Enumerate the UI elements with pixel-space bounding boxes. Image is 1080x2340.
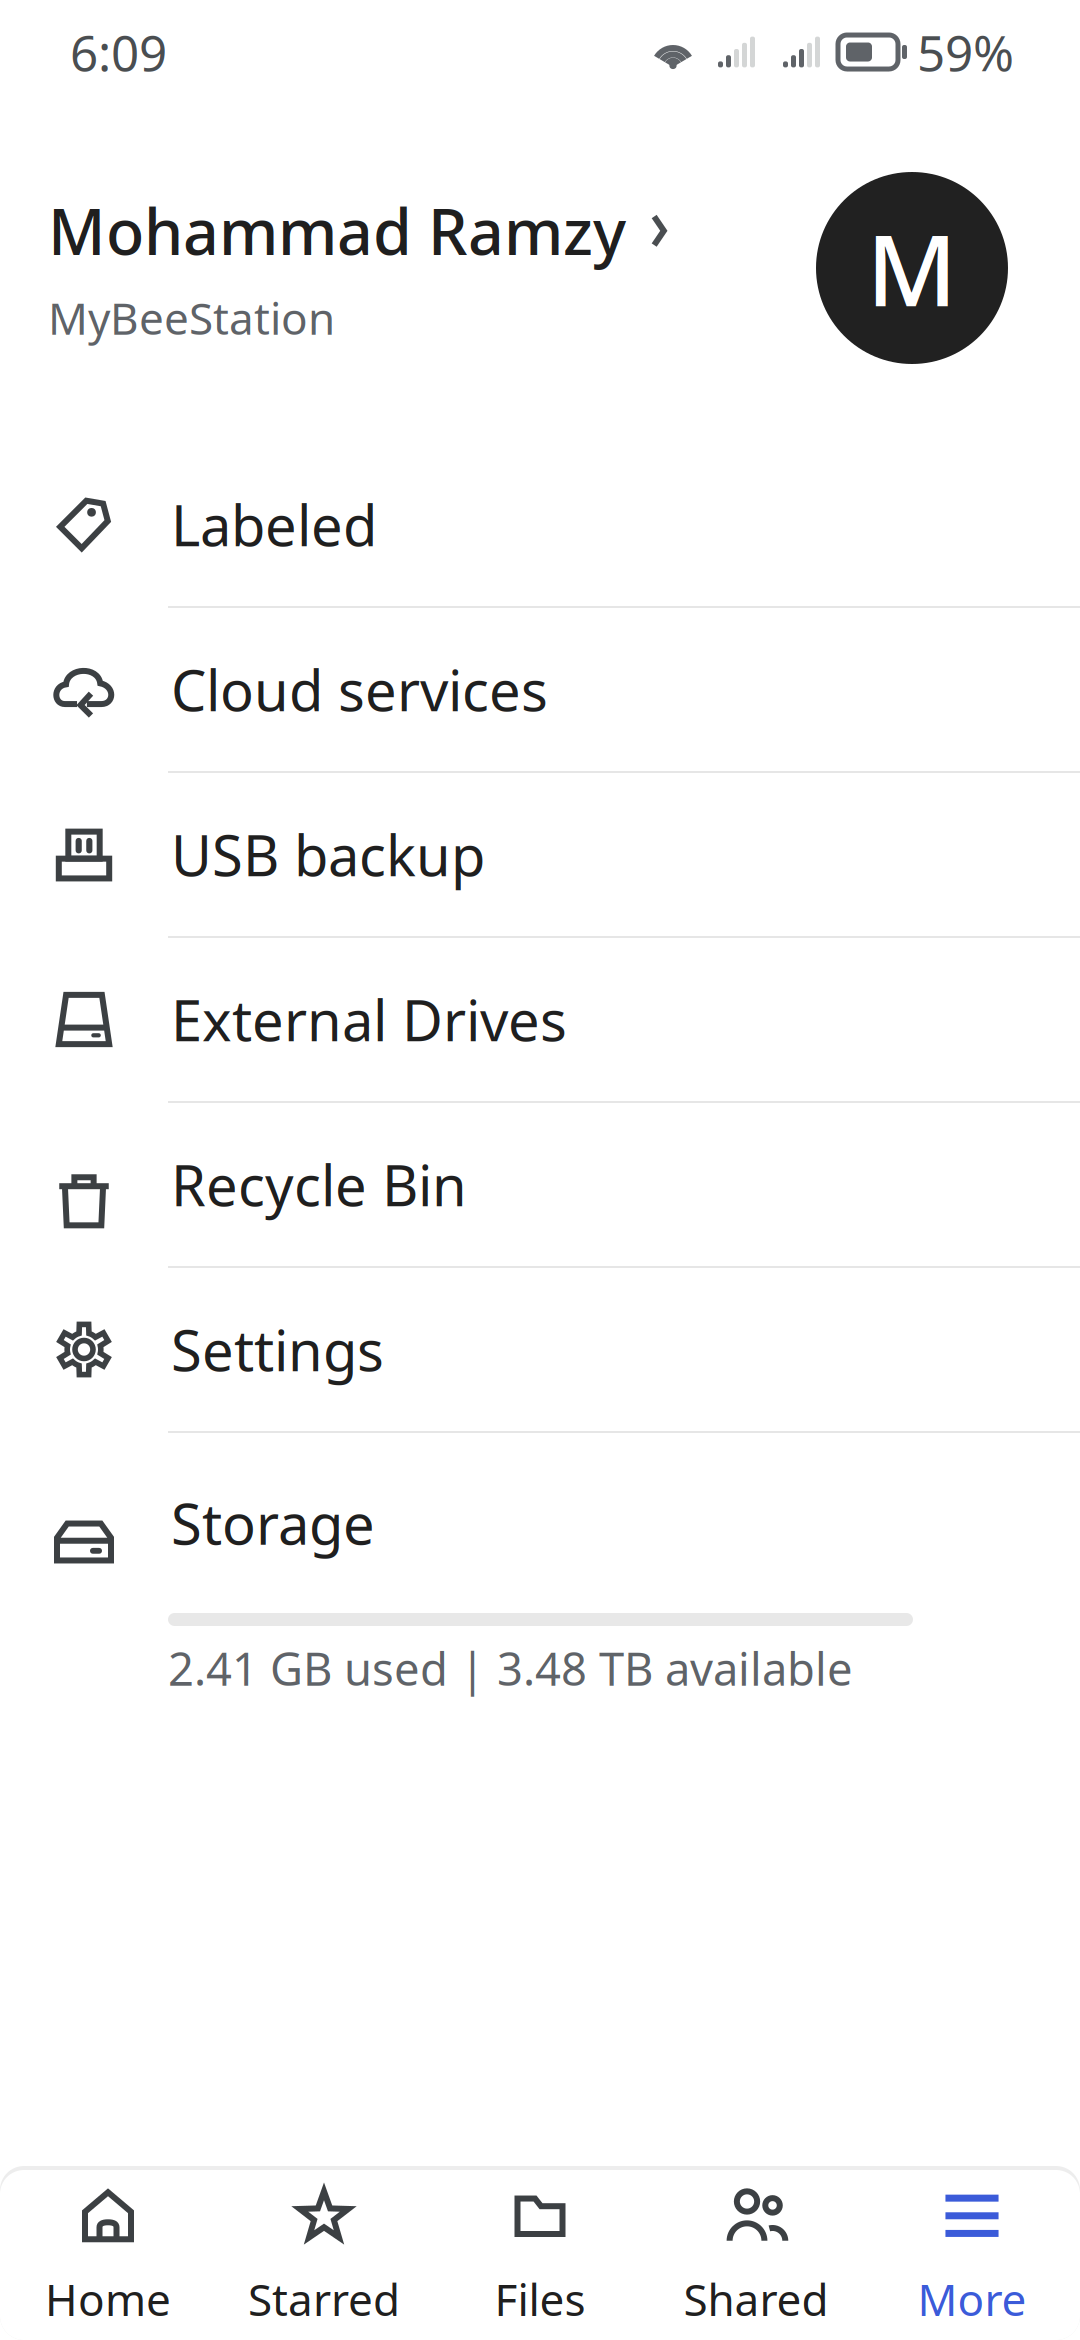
staticText: Starred [248,2270,400,2328]
staticText: USB backup [171,817,485,892]
staticText: 59% [917,19,1014,85]
staticText: Storage [171,1486,375,1560]
button[interactable]: Shared [648,2154,864,2340]
staticText: Mohammad Ramzy [48,189,626,272]
staticText: Shared [683,2270,828,2328]
button[interactable]: Settings [0,1268,1080,1431]
staticText: Files [494,2270,585,2328]
staticText: 2.41 GB used | 3.48 TB available [168,1638,853,1698]
staticText: Labeled [171,487,377,562]
staticText: MyBeeStation [48,288,335,347]
button[interactable]: USB backup [0,773,1080,936]
staticText: Recycle Bin [171,1147,467,1222]
staticText: 6:09 [70,19,167,85]
button[interactable]: More [864,2154,1080,2340]
staticText: Home [45,2270,171,2328]
button[interactable]: External Drives [0,938,1080,1101]
button[interactable]: Recycle Bin [0,1103,1080,1266]
button[interactable]: Home [0,2154,216,2340]
staticText: External Drives [171,982,567,1057]
button[interactable]: Starred [216,2154,432,2340]
staticText: Cloud services [171,652,548,727]
button[interactable]: Labeled [0,443,1080,606]
button[interactable]: Files [432,2154,648,2340]
staticText: M [866,202,957,333]
button[interactable]: Cloud services [0,608,1080,771]
button[interactable]: Storage [0,1433,1080,1613]
staticText: More [917,2270,1026,2328]
button[interactable]: Mohammad Ramzy [0,104,1080,420]
staticText: Settings [171,1312,384,1387]
